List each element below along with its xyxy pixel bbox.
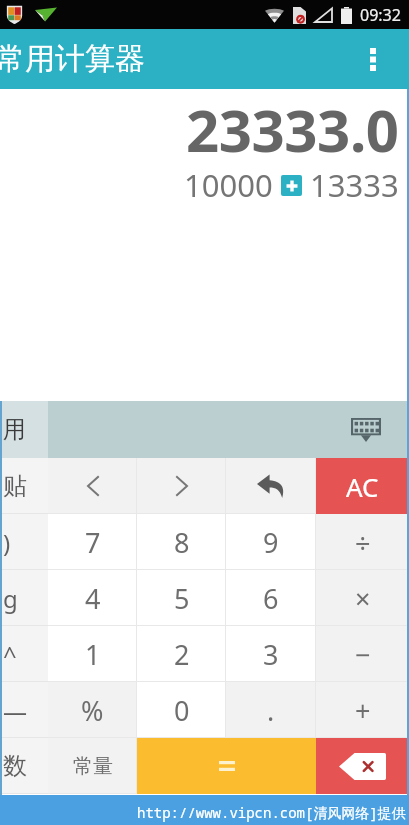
staticText: + (355, 692, 371, 729)
button[interactable]: 5 (137, 570, 226, 626)
button[interactable]: 3 (226, 626, 316, 682)
button[interactable]: 9 (226, 514, 316, 570)
staticText: http://www.vipcn.com[清风网络]提供 (137, 803, 406, 822)
button[interactable] (137, 458, 226, 514)
button[interactable]: ^ (0, 626, 48, 682)
staticText: 9 (263, 524, 279, 561)
button[interactable] (226, 458, 316, 514)
staticText: 6 (263, 580, 279, 617)
button[interactable]: − (316, 626, 409, 682)
button[interactable]: × (316, 570, 409, 626)
staticText: − (355, 636, 371, 673)
button[interactable]: . (226, 682, 316, 738)
staticText: g (3, 582, 18, 615)
button[interactable] (316, 738, 409, 794)
staticText: × (355, 580, 371, 617)
staticText: 1 (85, 636, 101, 673)
button[interactable]: 2 (137, 626, 226, 682)
staticText: 8 (174, 524, 190, 561)
staticText: 贴 (3, 471, 27, 501)
staticText: 0 (174, 692, 190, 729)
button[interactable]: 常量 (48, 738, 137, 794)
staticText: 09:32 (360, 4, 401, 26)
button[interactable]: ÷ (316, 514, 409, 570)
button[interactable]: 数 (0, 738, 48, 794)
button[interactable]: 贴 (0, 458, 48, 514)
staticText: 13333 (310, 164, 399, 206)
button[interactable]: Hide keyboard (345, 409, 387, 451)
button[interactable] (48, 458, 137, 514)
button[interactable]: 4 (48, 570, 137, 626)
staticText: ÷ (355, 524, 371, 561)
staticText: 常用计算器 (0, 40, 145, 78)
button[interactable]: 7 (48, 514, 137, 570)
staticText: ) (3, 526, 11, 559)
button[interactable]: — (0, 682, 48, 738)
staticText: 用 (3, 415, 26, 444)
staticText: 23333.0 (186, 90, 399, 169)
button[interactable]: + (316, 682, 409, 738)
staticText: 3 (263, 636, 279, 673)
staticText: ^ (3, 638, 17, 671)
button[interactable]: More options (347, 29, 399, 89)
button[interactable] (137, 738, 316, 794)
staticText: % (81, 692, 104, 729)
button[interactable]: g (0, 570, 48, 626)
button[interactable]: 0 (137, 682, 226, 738)
staticText: 10000 (184, 164, 273, 206)
button[interactable]: 8 (137, 514, 226, 570)
staticText: AC (346, 469, 379, 504)
staticText: 7 (85, 524, 101, 561)
staticText: 5 (174, 580, 190, 617)
button[interactable]: AC (316, 458, 409, 514)
staticText: . (267, 692, 275, 729)
button[interactable]: 1 (48, 626, 137, 682)
staticText: 2 (174, 636, 190, 673)
staticText: 4 (85, 580, 101, 617)
staticText: 常量 (73, 754, 113, 779)
staticText: 数 (3, 751, 27, 781)
button[interactable]: % (48, 682, 137, 738)
button[interactable]: ) (0, 514, 48, 570)
button[interactable]: 6 (226, 570, 316, 626)
staticText: — (3, 694, 27, 727)
